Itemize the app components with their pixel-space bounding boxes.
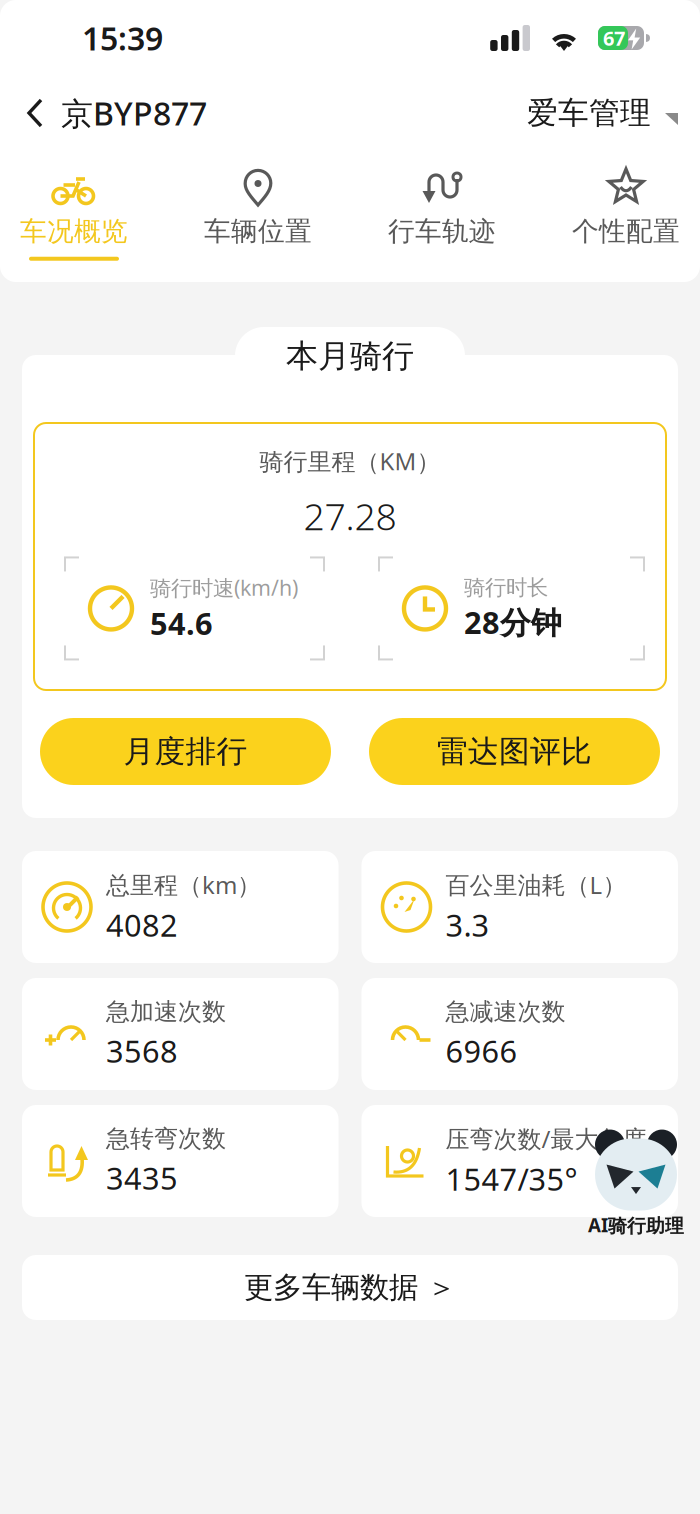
staticText: 百公里油耗（L） — [445, 869, 626, 901]
staticText: 个性配置 — [572, 215, 680, 248]
button[interactable]: 压弯次数/最大角度 — [361, 1105, 678, 1217]
button[interactable]: 急加速次数 — [22, 978, 338, 1090]
staticText: 雷达图评比 — [437, 733, 592, 770]
staticText: AI骑行助理 — [588, 1213, 684, 1237]
button[interactable]: 京BYP877 — [0, 76, 207, 150]
staticText: 28分钟 — [464, 602, 562, 642]
button[interactable]: 百公里油耗（L） — [361, 851, 678, 963]
button[interactable]: 急转弯次数 — [22, 1105, 338, 1217]
button[interactable]: 雷达图评比 — [369, 718, 660, 785]
staticText: 急加速次数 — [106, 997, 226, 1026]
staticText: 3568 — [106, 1030, 178, 1071]
staticText: 车辆位置 — [204, 215, 312, 248]
staticText: 3435 — [106, 1157, 178, 1198]
button[interactable]: 更多车辆数据 ＞ — [22, 1255, 678, 1320]
button[interactable]: 急减速次数 — [361, 978, 678, 1090]
staticText: 车况概览 — [20, 215, 128, 248]
staticText: 压弯次数/最大角度 — [445, 1123, 646, 1155]
staticText: 月度排行 — [123, 733, 247, 770]
staticText: 15:39 — [82, 17, 163, 59]
staticText: 4082 — [106, 905, 178, 945]
button[interactable]: 行车轨迹 — [369, 150, 515, 282]
staticText: 67 — [603, 25, 625, 51]
staticText: 1547/35° — [445, 1159, 577, 1199]
staticText: 更多车辆数据 ＞ — [244, 1269, 456, 1305]
button[interactable]: 车况概览 — [1, 150, 147, 282]
staticText: 骑行时长 — [464, 574, 548, 601]
button[interactable]: 总里程（km） — [22, 851, 338, 963]
button[interactable]: 个性配置 — [553, 150, 699, 282]
button[interactable]: AI骑行助理 — [588, 1125, 684, 1237]
staticText: 54.6 — [150, 603, 213, 643]
staticText: 本月骑行 — [286, 336, 414, 376]
staticText: 急转弯次数 — [106, 1124, 226, 1153]
staticText: 急减速次数 — [445, 997, 565, 1026]
staticText: 骑行里程（KM） — [259, 445, 440, 477]
staticText: 6966 — [445, 1030, 517, 1071]
staticText: 总里程（km） — [106, 869, 261, 901]
button[interactable]: 月度排行 — [40, 718, 331, 785]
staticText: 骑行时速(km/h) — [150, 573, 298, 602]
button[interactable]: 爱车管理 — [527, 76, 700, 150]
staticText: 行车轨迹 — [388, 215, 496, 248]
staticText: 3.3 — [445, 905, 489, 945]
button[interactable]: 车辆位置 — [185, 150, 331, 282]
staticText: 京BYP877 — [61, 92, 207, 134]
staticText: 27.28 — [303, 491, 396, 540]
staticText: 爱车管理 — [527, 94, 651, 132]
